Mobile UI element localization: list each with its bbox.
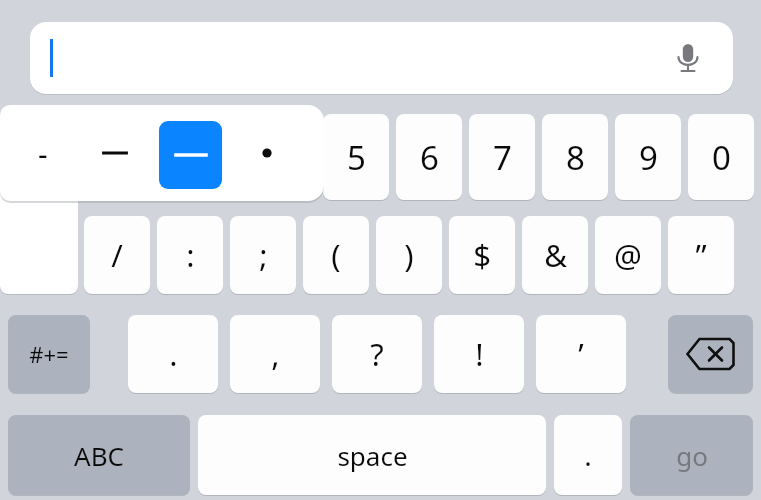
staticText: 0 [712, 135, 731, 180]
button[interactable]: space [198, 415, 546, 495]
button[interactable]: : [157, 216, 223, 294]
button[interactable] [84, 113, 146, 193]
staticText: ! [475, 333, 484, 375]
staticText: . [169, 333, 178, 375]
staticText: : [186, 234, 195, 276]
button[interactable]: 0 [688, 114, 754, 200]
staticText: ABC [74, 438, 124, 473]
button[interactable]: Delete [668, 315, 753, 393]
staticText: , [271, 333, 280, 375]
staticText: ? [370, 333, 384, 375]
button[interactable]: . [554, 415, 622, 495]
button[interactable]: ? [332, 315, 422, 393]
staticText: 9 [639, 135, 658, 180]
staticText: ’ [578, 333, 584, 375]
staticText: space [337, 438, 408, 473]
button[interactable]: ’ [536, 315, 626, 393]
button[interactable]: go [630, 415, 753, 495]
button[interactable]: #+= [8, 315, 90, 393]
button[interactable]: & [522, 216, 588, 294]
button[interactable]: 5 [323, 114, 389, 200]
staticText: #+= [29, 339, 69, 369]
button[interactable]: 9 [615, 114, 681, 200]
staticText: & [544, 234, 567, 276]
staticText: 6 [420, 135, 439, 180]
button[interactable]: ) [376, 216, 442, 294]
button[interactable] [236, 113, 298, 193]
button[interactable]: 8 [542, 114, 608, 200]
button[interactable]: ABC [8, 415, 190, 495]
button[interactable]: $ [449, 216, 515, 294]
staticText: / [111, 234, 123, 276]
staticText: . [584, 436, 592, 474]
button[interactable]: ; [230, 216, 296, 294]
staticText: go [676, 438, 708, 473]
staticText: ) [404, 234, 414, 276]
button[interactable]: ! [434, 315, 524, 393]
button[interactable]: . [128, 315, 218, 393]
button[interactable]: 6 [396, 114, 462, 200]
button[interactable]: , [230, 315, 320, 393]
button[interactable]: / [84, 216, 150, 294]
staticText: ( [331, 234, 341, 276]
staticText: - [38, 133, 48, 174]
staticText: ; [259, 234, 268, 276]
staticText: ” [695, 234, 707, 276]
staticText: 7 [493, 135, 512, 180]
button[interactable]: @ [595, 216, 661, 294]
button[interactable]: ( [303, 216, 369, 294]
staticText: @ [614, 234, 642, 276]
button[interactable]: Voice input [668, 38, 708, 78]
button[interactable]: Em dash, selected [159, 121, 222, 189]
staticText: $ [473, 234, 491, 276]
button[interactable]: Voice input [30, 22, 733, 94]
staticText: 8 [566, 135, 585, 180]
button[interactable]: 7 [469, 114, 535, 200]
staticText: 5 [347, 135, 366, 180]
button[interactable]: - [12, 113, 74, 193]
button[interactable]: ” [668, 216, 734, 294]
